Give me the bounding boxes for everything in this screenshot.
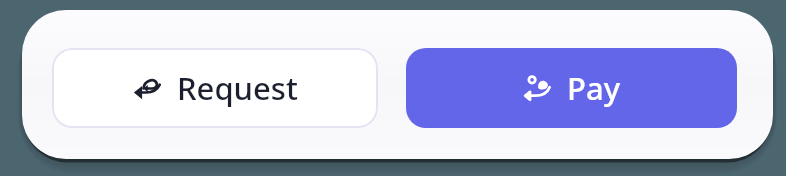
- button[interactable]: Pay: [406, 48, 737, 128]
- staticText: Request: [177, 67, 298, 109]
- staticText: Pay: [567, 67, 621, 109]
- button[interactable]: Request: [52, 48, 378, 128]
